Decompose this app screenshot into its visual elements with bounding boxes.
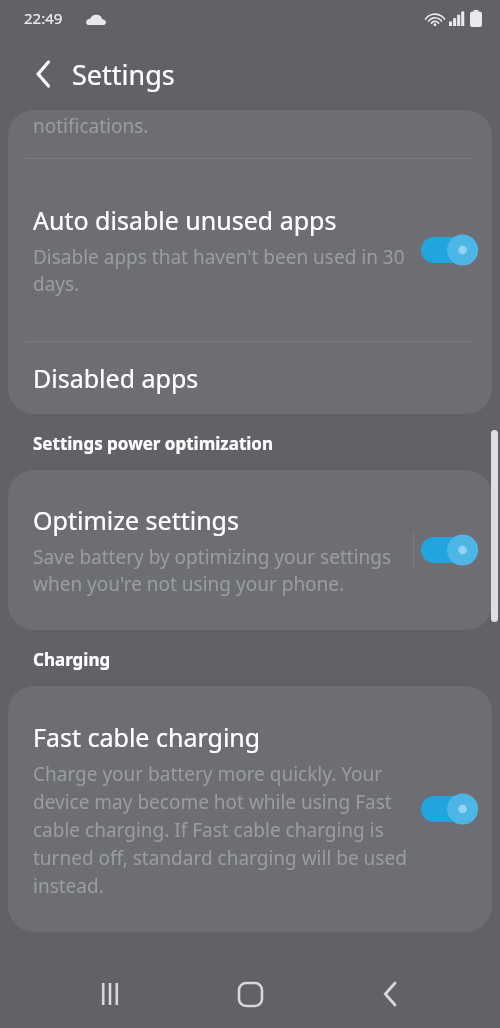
staticText: Charge your battery more quickly. Your d… [33,761,410,899]
button[interactable]: Toggle on [418,529,480,571]
staticText: Settings [72,56,175,93]
button[interactable]: Home [220,964,280,1024]
staticText: Settings power optimization [33,432,274,455]
staticText: Disable apps that haven't been used in 3… [33,244,410,297]
button[interactable]: Toggle on [418,229,480,271]
staticText: Fast cable charging [33,720,261,754]
button[interactable]: Auto disable unused apps [8,159,492,341]
button[interactable]: notifications. [8,110,492,158]
button[interactable]: Optimize settings [8,470,492,630]
button[interactable]: Disabled apps [8,342,492,414]
staticText: Charging [33,648,111,671]
button[interactable]: Back [360,964,420,1024]
staticText: Optimize settings [33,503,239,537]
staticText: notifications. [33,113,149,139]
staticText: Save battery by optimizing your settings… [33,544,405,597]
staticText: 22:49 [24,8,63,28]
button[interactable]: Fast cable charging [8,686,492,932]
button[interactable]: Back [22,52,66,96]
button[interactable]: Recent apps [80,964,140,1024]
staticText: Auto disable unused apps [33,203,337,237]
button[interactable]: Toggle on [418,788,480,830]
staticText: Disabled apps [33,361,199,395]
